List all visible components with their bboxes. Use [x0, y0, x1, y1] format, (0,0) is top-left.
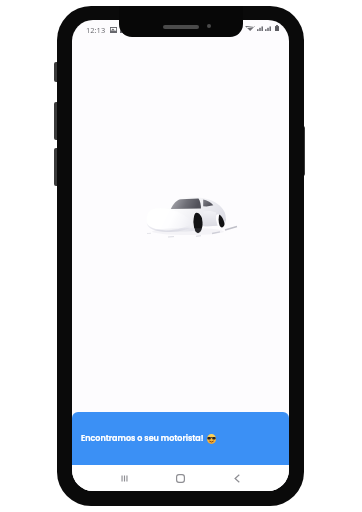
button[interactable]: Encontramos o seu motorista! — [72, 412, 289, 465]
button[interactable]: Recent apps — [114, 468, 134, 488]
button[interactable]: Home — [170, 468, 190, 488]
staticText: Encontramos o seu motorista! — [81, 433, 204, 444]
button[interactable]: Back — [227, 468, 247, 488]
staticText: 12:13 — [86, 25, 106, 35]
